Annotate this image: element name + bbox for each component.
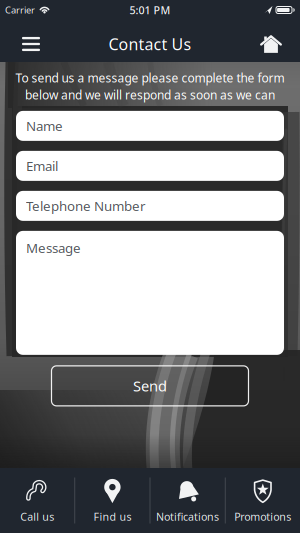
button[interactable]: Promotions: [225, 468, 300, 533]
button[interactable]: Message: [16, 231, 284, 355]
staticText: Message: [26, 239, 81, 257]
staticText: Name: [26, 117, 63, 135]
staticText: Find us: [93, 509, 131, 524]
staticText: Contact Us: [108, 33, 191, 55]
staticText: Email: [26, 157, 58, 175]
button[interactable]: Telephone Number: [16, 191, 284, 221]
button[interactable]: Name: [16, 111, 284, 141]
button[interactable]: Email: [16, 151, 284, 181]
button[interactable]: Call us: [0, 468, 74, 533]
staticText: To send us a message please complete the…: [15, 70, 284, 86]
button[interactable]: Find us: [75, 468, 150, 533]
staticText: Call us: [20, 509, 54, 524]
button[interactable]: Notifications: [150, 468, 225, 533]
staticText: below and we will respond as soon as we …: [25, 87, 275, 103]
staticText: Notifications: [156, 509, 219, 524]
staticText: Carrier: [5, 4, 35, 16]
staticText: 5:01 PM: [129, 3, 170, 17]
button[interactable]: Home: [254, 27, 288, 61]
button[interactable]: Menu: [14, 27, 48, 61]
button[interactable]: Send: [51, 366, 248, 406]
staticText: Promotions: [234, 509, 291, 524]
staticText: Send: [133, 376, 167, 396]
staticText: Telephone Number: [26, 197, 146, 215]
